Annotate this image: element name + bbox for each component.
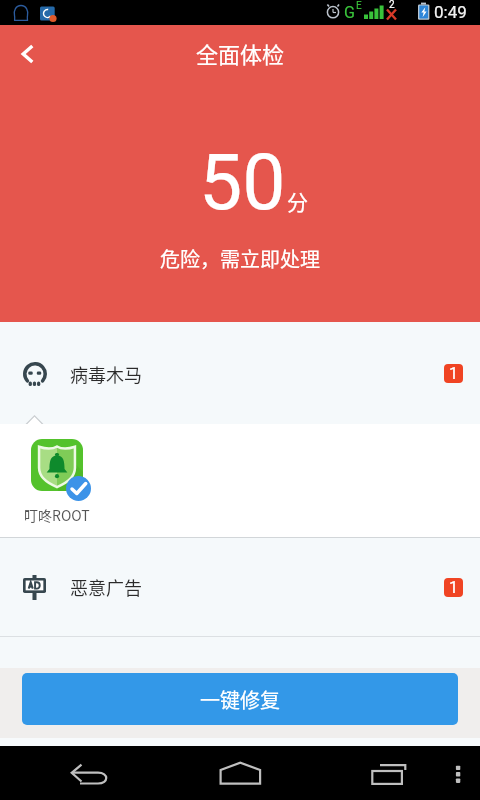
button[interactable]: Home	[210, 746, 272, 800]
button[interactable]: Recent apps	[355, 746, 415, 800]
button[interactable]: Back	[50, 746, 132, 800]
button[interactable]: 病毒木马	[0, 327, 480, 420]
button[interactable]: 恶意广告	[0, 539, 480, 635]
staticText: 1	[449, 364, 458, 383]
button[interactable]: 一键修复	[22, 673, 458, 725]
staticText: 1	[449, 578, 458, 597]
staticText: 叮咚ROOT	[24, 505, 90, 525]
button[interactable]	[31, 439, 95, 497]
staticText: 危险，需立即处理	[160, 244, 320, 273]
button[interactable]: Back	[2, 28, 54, 80]
staticText: 一键修复	[200, 685, 280, 714]
staticText: 病毒木马	[70, 361, 142, 387]
staticText: 分	[287, 186, 308, 216]
staticText: G	[344, 3, 355, 22]
button[interactable]: More options	[442, 746, 476, 800]
staticText: 2	[389, 0, 395, 11]
staticText: 全面体检	[196, 37, 285, 69]
staticText: 恶意广告	[70, 574, 142, 600]
staticText: 0:49	[434, 2, 467, 22]
staticText: 50	[199, 138, 286, 228]
staticText: E	[356, 0, 362, 12]
